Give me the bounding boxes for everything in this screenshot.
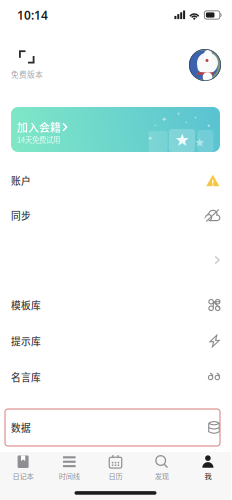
- staticText: 免费版本: [11, 68, 43, 80]
- staticText: 10:14: [17, 7, 48, 23]
- staticText: 我: [204, 471, 211, 481]
- button[interactable]: 日历: [92, 451, 139, 483]
- staticText: 名言库: [11, 370, 41, 384]
- staticText: 14天免费试用: [17, 134, 60, 145]
- button[interactable]: 发现: [139, 451, 185, 483]
- button[interactable]: [0, 233, 231, 287]
- staticText: 数据: [11, 420, 31, 435]
- staticText: 时间线: [59, 471, 80, 481]
- staticText: 加入会籍: [17, 119, 61, 135]
- button[interactable]: 个人头像: [189, 49, 221, 81]
- staticText: 提示库: [11, 334, 41, 348]
- button[interactable]: 名言库: [0, 359, 231, 395]
- staticText: 日记本: [13, 471, 34, 481]
- staticText: 账户: [11, 173, 31, 188]
- staticText: 日历: [108, 471, 122, 481]
- staticText: 同步: [11, 208, 31, 223]
- staticText: 发现: [155, 471, 169, 481]
- button[interactable]: 数据: [0, 409, 231, 446]
- button[interactable]: 日记本: [0, 451, 46, 483]
- button[interactable]: 账户: [0, 163, 231, 198]
- button[interactable]: 加入会籍: [0, 107, 231, 152]
- button[interactable]: 时间线: [46, 451, 92, 483]
- staticText: 模板库: [11, 298, 41, 312]
- button[interactable]: 同步: [0, 198, 231, 233]
- button[interactable]: 我: [185, 451, 231, 483]
- button[interactable]: 提示库: [0, 323, 231, 359]
- button[interactable]: 模板库: [0, 287, 231, 323]
